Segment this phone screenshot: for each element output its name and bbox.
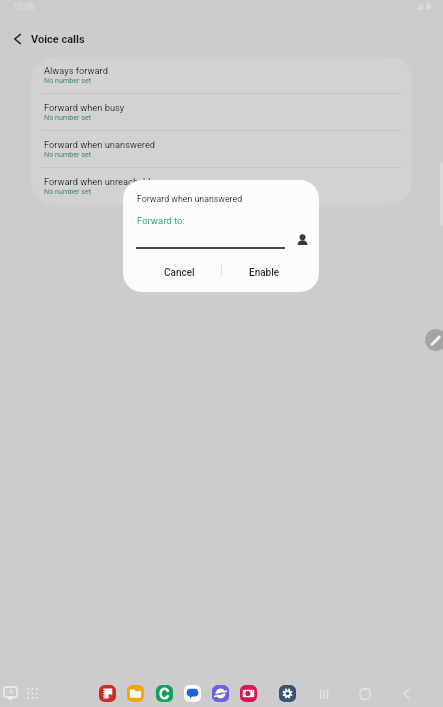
staticText: No number set xyxy=(44,187,92,195)
button[interactable]: Settings xyxy=(276,682,298,704)
button[interactable]: Forward when unreachable xyxy=(31,168,412,205)
staticText: 10:00 xyxy=(13,2,35,12)
staticText: Enable xyxy=(249,267,280,279)
button[interactable]: Apps xyxy=(21,682,43,704)
button[interactable]: Enable xyxy=(221,256,319,290)
button[interactable]: Internet xyxy=(209,682,231,704)
staticText: Cancel xyxy=(164,267,195,279)
button[interactable]: Forward when busy xyxy=(31,94,412,131)
button[interactable]: Cancel xyxy=(123,256,221,290)
button[interactable]: Camera xyxy=(237,682,259,704)
staticText: Forward to: xyxy=(137,215,185,226)
staticText: Forward when unanswered xyxy=(137,194,243,204)
button[interactable]: Always forward xyxy=(31,57,412,94)
staticText: Forward when unanswered xyxy=(44,139,156,150)
button[interactable]: Messages xyxy=(181,682,203,704)
button[interactable]: Recent apps xyxy=(311,681,337,707)
staticText: Voice calls xyxy=(31,33,85,46)
staticText: Forward when unreachable xyxy=(44,176,156,187)
button[interactable]: Screen mode xyxy=(0,682,21,704)
staticText: No number set xyxy=(44,113,92,121)
button[interactable]: Forward when unanswered xyxy=(31,131,412,168)
button[interactable]: My Files xyxy=(124,682,146,704)
button[interactable]: Samsung Notes xyxy=(96,682,118,704)
button[interactable]: Back xyxy=(393,681,419,707)
button[interactable]: Home xyxy=(352,681,378,707)
button[interactable]: Edit xyxy=(425,329,443,351)
staticText: No number set xyxy=(44,76,92,84)
staticText: No number set xyxy=(44,150,92,158)
button[interactable]: Contacts xyxy=(153,682,175,704)
staticText: Always forward xyxy=(44,65,108,76)
staticText: Forward when busy xyxy=(44,102,125,113)
button[interactable]: Navigate up xyxy=(4,26,30,52)
